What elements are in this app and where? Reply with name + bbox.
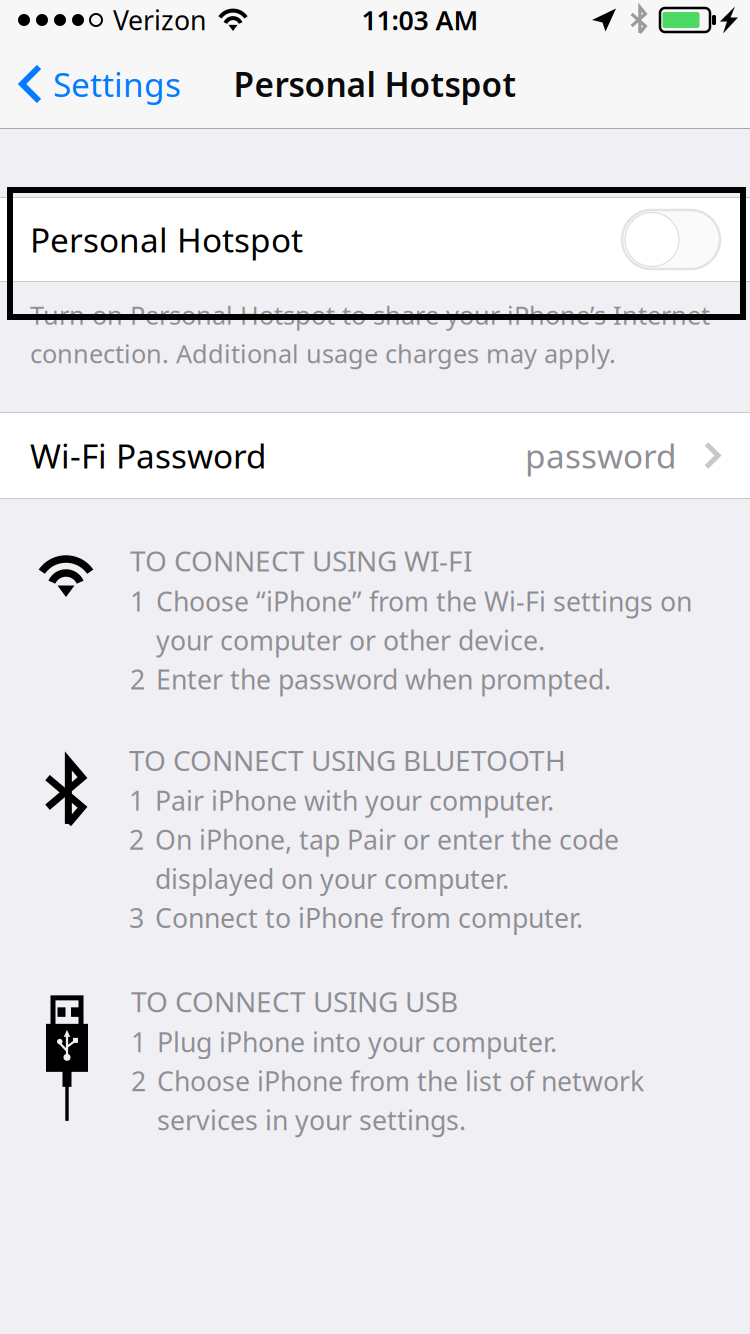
staticText: connection. Additional usage charges may… [30,337,616,370]
staticText: Personal Hotspot [233,62,516,106]
staticText: 2 [131,1063,146,1099]
staticText: On iPhone, tap Pair or enter the code di… [155,822,619,896]
button[interactable]: Personal Hotspot [0,198,750,281]
staticText: 1 [131,1024,146,1060]
staticText: Choose “iPhone” from the Wi-Fi settings … [156,583,692,658]
staticText: Verizon [113,2,206,38]
staticText: 2 [130,661,145,697]
staticText: TO CONNECT USING WI-FI [130,542,472,579]
button[interactable]: Settings [0,50,199,118]
staticText: 1 [130,583,145,619]
staticText: 3 [129,900,144,935]
staticText: Personal Hotspot [30,217,303,262]
staticText: Plug iPhone into your computer. [157,1024,557,1060]
staticText: Pair iPhone with your computer. [155,783,554,818]
staticText: Wi-Fi Password [30,433,267,478]
staticText: Enter the password when prompted. [156,661,611,697]
staticText: Connect to iPhone from computer. [155,900,583,935]
staticText: 2 [129,822,144,857]
staticText: Settings [53,62,181,106]
staticText: TO CONNECT USING USB [131,983,458,1020]
staticText: 11:03 AM [361,2,478,38]
staticText: password [525,433,677,478]
button[interactable]: Wi-Fi Password [0,413,750,498]
staticText: 1 [129,783,144,818]
staticText: Turn on Personal Hotspot to share your i… [30,298,710,332]
staticText: Choose iPhone from the list of network s… [157,1063,644,1138]
staticText: TO CONNECT USING BLUETOOTH [129,741,566,779]
